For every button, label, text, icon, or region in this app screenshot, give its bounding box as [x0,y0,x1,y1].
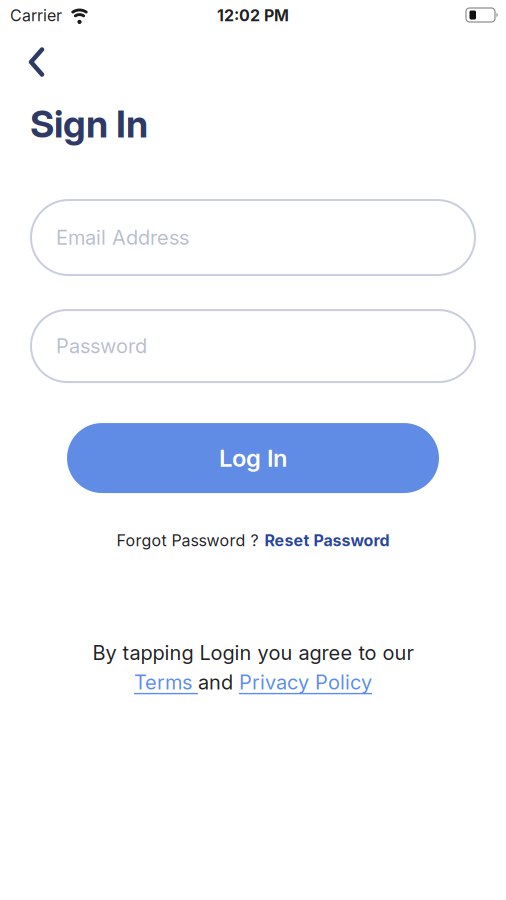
staticText: Terms [134,670,198,694]
staticText: By tapping Login you agree to our [92,641,413,664]
staticText: Carrier [10,6,62,25]
button[interactable]: Password [31,310,475,382]
staticText: Email Address [56,226,189,249]
button[interactable]: Reset Password [264,531,389,550]
staticText: Log In [219,444,287,472]
button[interactable]: Email Address [31,200,475,275]
staticText: and [198,670,239,694]
button[interactable]: Privacy Policy [239,670,372,694]
button[interactable]: Back [28,47,45,77]
staticText: 12:02 PM [217,6,289,25]
staticText: Reset Password [264,531,389,550]
staticText: Privacy Policy [239,670,372,694]
staticText: Sign In [30,102,148,146]
staticText: Forgot Password ? [116,531,258,550]
button[interactable]: Log In [67,423,439,493]
staticText: Password [56,334,147,358]
button[interactable]: Terms [134,670,198,694]
